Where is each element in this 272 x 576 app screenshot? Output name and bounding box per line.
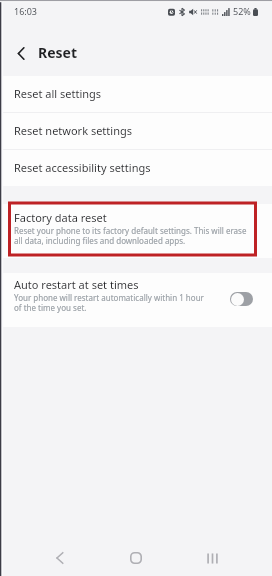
staticText: Auto restart at set times <box>14 277 139 292</box>
staticText: Reset your phone to its factory default … <box>14 225 247 247</box>
button[interactable]: Recent apps <box>174 528 250 576</box>
button[interactable]: Back <box>22 528 98 576</box>
button[interactable]: Navigate up <box>7 40 33 66</box>
staticText: Reset network settings <box>14 123 132 138</box>
button[interactable]: Home <box>98 528 174 576</box>
button[interactable]: Reset all settings <box>0 76 272 112</box>
staticText: Your phone will restart automatically wi… <box>14 292 204 314</box>
staticText: 16:03 <box>14 5 38 17</box>
button[interactable]: Factory data reset <box>0 204 272 258</box>
button[interactable]: Reset accessibility settings <box>0 150 272 186</box>
button[interactable]: Auto restart toggle, off <box>230 292 253 306</box>
staticText: Reset <box>38 43 78 62</box>
staticText: Factory data reset <box>14 210 107 225</box>
staticText: 52% <box>233 5 251 17</box>
staticText: Reset all settings <box>14 86 102 101</box>
button[interactable]: Reset network settings <box>0 113 272 149</box>
staticText: Reset accessibility settings <box>14 160 151 175</box>
button[interactable]: Auto restart at set times <box>0 273 272 327</box>
